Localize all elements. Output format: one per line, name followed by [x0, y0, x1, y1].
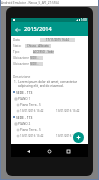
button[interactable]: PIANO 1 [11, 95, 88, 102]
staticText: 2015/2014 [24, 25, 52, 33]
button[interactable]: Back [11, 23, 24, 36]
staticText: 13/01/2016 13:42 [56, 134, 80, 138]
staticText: 1:00 [81, 18, 87, 22]
button[interactable]: 13/01/2016 13:42 [11, 133, 88, 138]
staticText: 17/11/2015 16:44 [46, 38, 69, 42]
staticText: SEDE - 173 [30, 56, 43, 60]
staticText: SEDE - 173 [16, 115, 33, 119]
button[interactable]: PIANO 2 [11, 120, 88, 127]
staticText: Ubicazione: [13, 62, 29, 66]
staticText: ACCESSO - Sede [33, 50, 54, 54]
staticText: 13/01/2016 13:42 [20, 134, 44, 138]
button[interactable]: SEDE - 173 [11, 88, 88, 95]
staticText: 1. Lorem ipsum dolor sit amet, consectet… [14, 80, 78, 88]
staticText: PIANO 2 [18, 122, 31, 126]
staticText: Android Emulator - Nexus_5_API_27:5554 [1, 1, 59, 5]
button[interactable]: Back [23, 146, 33, 156]
button[interactable]: Recents [63, 146, 73, 156]
staticText: Stato: [13, 44, 22, 48]
staticText: 13/01/2016 13:42 [56, 109, 80, 113]
staticText: Piano Terra - S [20, 128, 41, 132]
staticText: PIANO 1 [18, 97, 31, 101]
staticText: SEDE - 173 [30, 62, 43, 66]
staticText: Descrizione [13, 75, 31, 79]
button[interactable]: Piano Terra - S [11, 102, 88, 108]
staticText: Chiusa - Allocata [27, 44, 49, 48]
staticText: Ubicazione: [13, 56, 29, 60]
staticText: Piano Terra - S [20, 103, 41, 107]
button[interactable]: Home [44, 146, 54, 156]
button[interactable]: Piano Terra - S [11, 127, 88, 133]
button[interactable]: SEDE - 173 [11, 113, 88, 120]
staticText: SEDE - 173 [16, 90, 33, 94]
staticText: 13/01/2016 13:42 [20, 109, 44, 113]
staticText: Tipo Richiesta: [13, 50, 32, 54]
staticText: Data registrazione: [13, 38, 39, 42]
button[interactable]: 13/01/2016 13:42 [11, 108, 88, 113]
button[interactable]: Add [73, 132, 84, 143]
